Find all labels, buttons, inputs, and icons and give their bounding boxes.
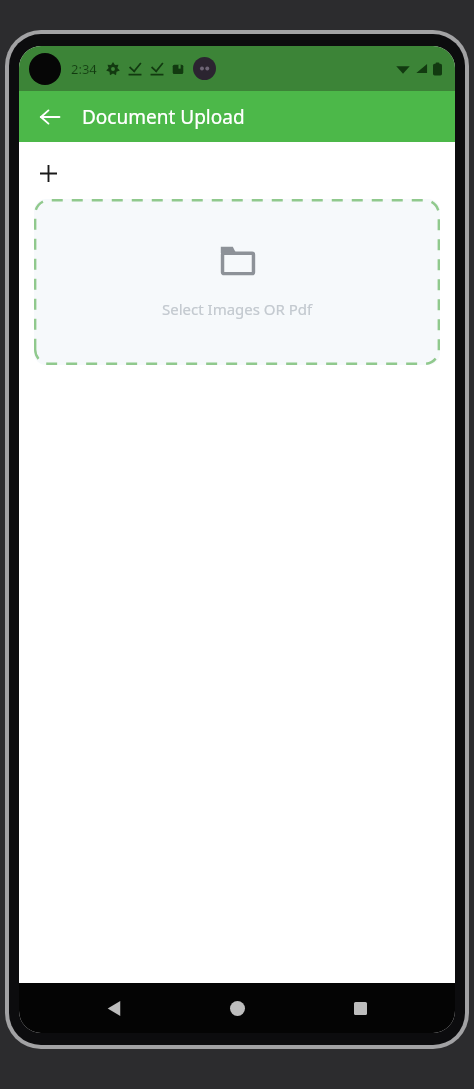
button[interactable]: Back — [86, 983, 142, 1033]
button[interactable]: Recent apps — [332, 983, 388, 1033]
staticText: Select Images OR Pdf — [162, 299, 313, 319]
staticText: 2:34 — [71, 60, 97, 78]
button[interactable]: Back — [29, 96, 71, 138]
staticText: Document Upload — [82, 104, 245, 130]
button[interactable]: Add — [35, 160, 61, 186]
button[interactable]: Select Images OR Pdf — [34, 199, 440, 365]
button[interactable]: Home — [209, 983, 265, 1033]
